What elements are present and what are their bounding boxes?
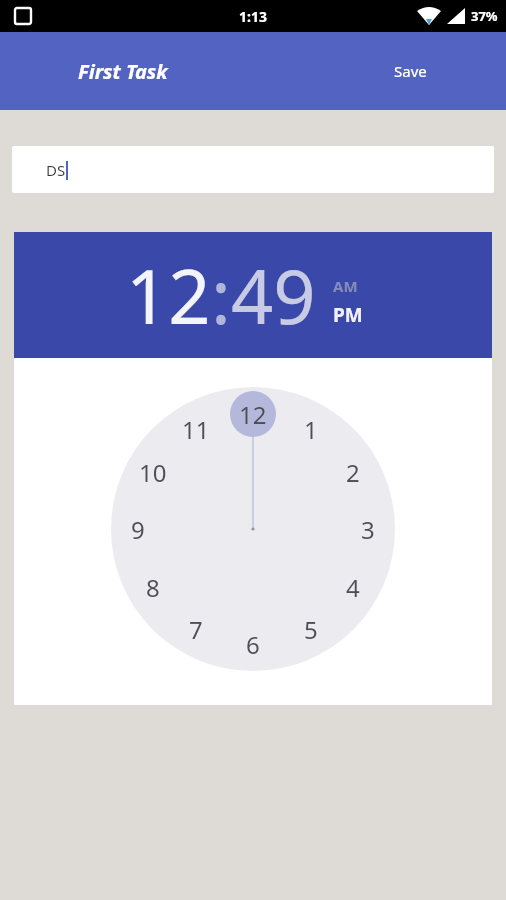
staticText: 4 xyxy=(346,571,360,604)
button[interactable]: AM xyxy=(333,276,358,296)
staticText: First Task xyxy=(78,58,168,85)
staticText: DS xyxy=(46,160,66,180)
staticText: 6 xyxy=(246,628,260,661)
staticText: 7 xyxy=(189,613,203,646)
staticText: 11 xyxy=(182,413,210,446)
button[interactable]: 2 xyxy=(331,450,375,494)
staticText: 5 xyxy=(304,613,318,646)
button[interactable]: Save xyxy=(386,53,435,89)
staticText: 10 xyxy=(139,456,167,489)
button[interactable]: 10 xyxy=(131,450,175,494)
button[interactable]: 8 xyxy=(131,565,175,609)
button[interactable]: PM xyxy=(333,302,363,328)
button[interactable]: 12 xyxy=(126,245,211,346)
button[interactable]: 12 xyxy=(231,392,275,436)
staticText: Save xyxy=(394,61,427,81)
staticText: 3 xyxy=(361,513,375,546)
staticText: 1:13 xyxy=(239,7,267,26)
button[interactable]: 7 xyxy=(174,607,218,651)
button[interactable]: 11 xyxy=(174,407,218,451)
staticText: 37% xyxy=(471,7,498,25)
button[interactable]: DS xyxy=(12,146,494,193)
button[interactable]: 1 xyxy=(289,407,333,451)
button[interactable]: 49 xyxy=(231,245,316,346)
staticText: 2 xyxy=(346,456,360,489)
button[interactable]: 5 xyxy=(289,607,333,651)
staticText: 8 xyxy=(146,571,160,604)
button[interactable]: 9 xyxy=(116,507,160,551)
staticText: 1 xyxy=(304,413,318,446)
button[interactable]: 6 xyxy=(231,622,275,666)
staticText: 9 xyxy=(131,513,145,546)
staticText: : xyxy=(211,245,231,346)
button[interactable]: 4 xyxy=(331,565,375,609)
button[interactable]: 3 xyxy=(346,507,390,551)
staticText: 12 xyxy=(239,398,267,431)
